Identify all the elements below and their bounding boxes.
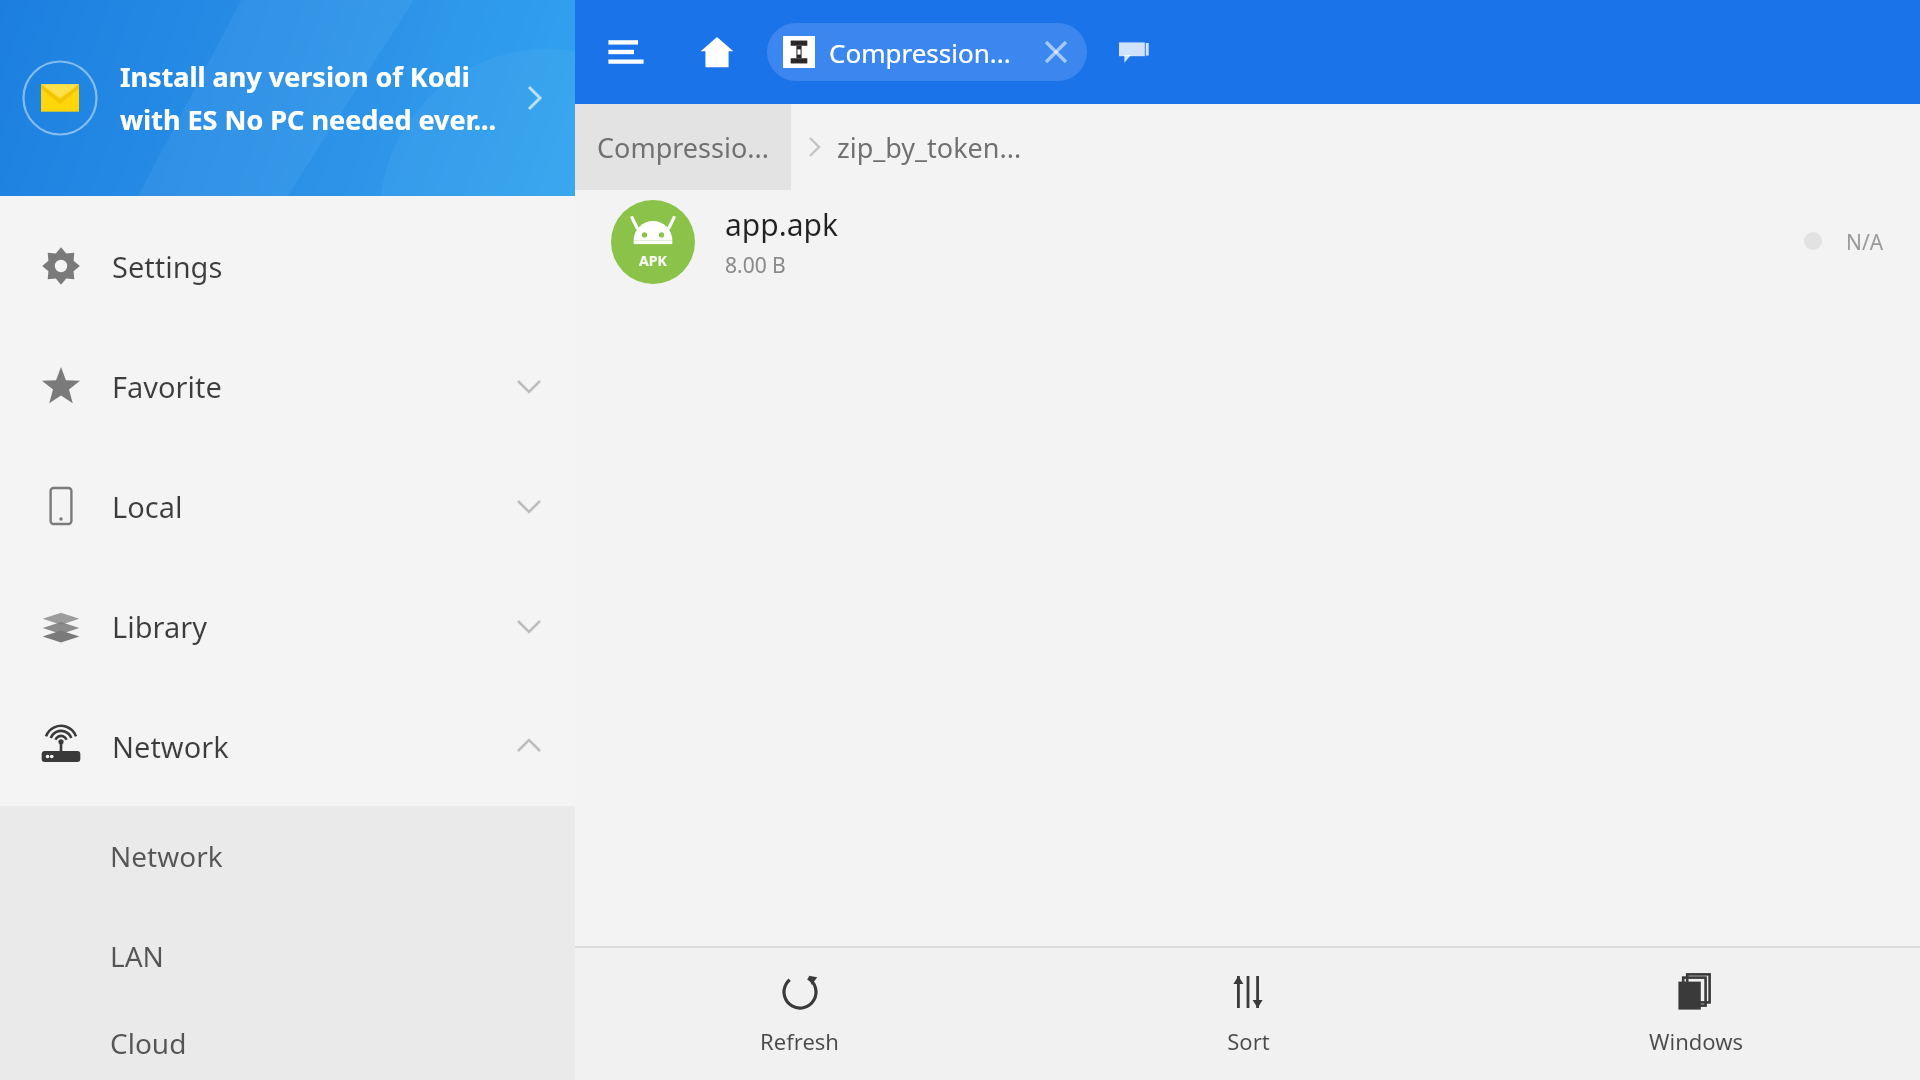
staticText: Settings — [112, 247, 223, 286]
button[interactable]: Library — [0, 566, 575, 686]
button[interactable]: Local — [0, 446, 575, 566]
button[interactable]: Windows — [1472, 946, 1920, 1080]
button[interactable]: APK — [575, 190, 1920, 294]
staticText: zip_by_token... — [837, 129, 1022, 166]
button[interactable]: Compression... — [767, 23, 1087, 81]
staticText: LAN — [110, 937, 164, 975]
staticText: Cloud — [110, 1024, 187, 1062]
button[interactable]: Settings — [0, 206, 575, 326]
staticText: 8.00 B — [725, 251, 786, 280]
button[interactable]: Cloud — [0, 1006, 575, 1080]
staticText: Favorite — [112, 367, 222, 406]
button[interactable]: Favorite — [0, 326, 575, 446]
staticText: Network — [112, 727, 229, 766]
button[interactable]: Home — [689, 24, 745, 80]
button[interactable]: LAN — [0, 906, 575, 1006]
staticText: Windows — [1649, 1026, 1743, 1056]
button[interactable]: Menu — [595, 21, 657, 83]
button[interactable]: Sort — [1024, 946, 1472, 1080]
button[interactable]: Compressio... — [575, 104, 791, 190]
staticText: with ES No PC needed ever... — [120, 101, 497, 138]
staticText: Local — [112, 487, 183, 526]
staticText: Sort — [1227, 1026, 1270, 1056]
button[interactable]: Refresh — [575, 946, 1024, 1080]
staticText: APK — [639, 251, 667, 270]
button[interactable]: Install any version of Kodi — [0, 0, 575, 196]
staticText: Refresh — [760, 1026, 839, 1056]
button[interactable]: Close tab — [1033, 29, 1079, 75]
staticText: N/A — [1846, 228, 1884, 257]
staticText: Compression... — [829, 35, 1011, 70]
button[interactable]: Network — [0, 686, 575, 806]
staticText: Compressio... — [597, 129, 769, 166]
button[interactable]: Messages — [1107, 25, 1161, 79]
button[interactable]: Network — [0, 806, 575, 906]
staticText: Network — [110, 837, 223, 875]
button[interactable]: zip_by_token... — [837, 129, 1022, 166]
staticText: app.apk — [725, 204, 839, 245]
staticText: Install any version of Kodi — [120, 58, 470, 95]
staticText: Library — [112, 607, 207, 646]
